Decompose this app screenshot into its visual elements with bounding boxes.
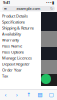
staticText: Product Details [2,13,28,19]
staticText: › [16,91,18,98]
button[interactable]: Manage Licences [2,56,40,60]
staticText: Warranty [2,37,19,43]
staticText: •••▮ [46,0,54,5]
staticText: Tax [2,73,8,79]
staticText: ▤ [37,92,42,98]
button[interactable]: Pass Name [2,44,40,48]
button[interactable]: Call [41,74,51,84]
button[interactable]: Specifications [2,20,40,24]
staticText: ᴀA [4,7,7,10]
button[interactable]: Deposit Register [2,62,40,66]
button[interactable]: Tabs [46,89,57,100]
staticText: Pass Options [2,49,24,55]
staticText: example.com [16,6,40,11]
button[interactable]: Share [23,89,34,100]
staticText: ▢ [49,92,54,98]
button[interactable]: Tax [2,74,40,78]
button[interactable]: Warranty [2,38,40,42]
staticText: Pass Name [2,43,22,49]
button[interactable]: Shipping & Returns [2,26,40,30]
staticText: Order Year [2,67,22,73]
button[interactable]: Bookmarks [34,89,46,100]
staticText: Deposit Register [2,61,30,67]
button[interactable]: ᴀA [2,6,55,11]
staticText: Availability [2,31,21,37]
staticText: Manage Licences [2,55,32,61]
button[interactable]: Forward [11,89,23,100]
staticText: 9:41 [3,0,10,5]
staticText: ↑ [26,92,30,98]
staticText: Shipping & Returns [2,25,34,31]
button[interactable]: Product Details [2,14,40,18]
button[interactable]: Order Year [2,68,40,72]
staticText: ↻ [50,6,53,11]
staticText: ‹ [5,91,7,98]
staticText: Specifications [2,19,25,25]
button[interactable]: Pass Options [2,50,40,54]
button[interactable]: Availability [2,32,40,36]
button[interactable]: Back [0,89,11,100]
